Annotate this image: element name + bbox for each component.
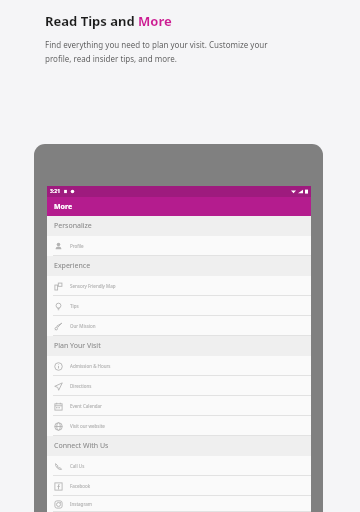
button[interactable]: Directions [47, 376, 311, 396]
staticText: Plan Your Visit [54, 341, 101, 351]
staticText: Tips [70, 303, 79, 309]
button[interactable]: Profile [47, 236, 311, 256]
staticText: Read Tips and More [45, 12, 172, 30]
staticText: Profile [70, 243, 84, 249]
staticText: Find everything you need to plan your vi… [45, 39, 268, 50]
staticText: Connect With Us [54, 441, 109, 451]
staticText: Call Us [70, 463, 85, 469]
staticText: 3:21 [50, 188, 60, 195]
staticText: Facebook [70, 483, 91, 489]
staticText: Personalize [54, 221, 92, 231]
staticText: Admission & Hours [70, 363, 111, 369]
button[interactable]: Visit our website [47, 416, 311, 436]
button[interactable]: Admission & Hours [47, 356, 311, 376]
button[interactable]: Facebook [47, 476, 311, 496]
button[interactable]: Sensory Friendly Map [47, 276, 311, 296]
staticText: profile, read insider tips, and more. [45, 53, 177, 64]
button[interactable]: Tips [47, 296, 311, 316]
staticText: More [54, 202, 73, 212]
button[interactable]: Our Mission [47, 316, 311, 336]
staticText: Event Calendar [70, 403, 102, 409]
staticText: Visit our website [70, 423, 105, 429]
staticText: Our Mission [70, 323, 96, 329]
staticText: Experience [54, 261, 91, 271]
button[interactable]: Call Us [47, 456, 311, 476]
button[interactable]: Instagram [47, 496, 311, 512]
staticText: Instagram [70, 501, 92, 507]
button[interactable]: Event Calendar [47, 396, 311, 416]
staticText: Directions [70, 383, 92, 389]
staticText: Sensory Friendly Map [70, 283, 116, 289]
